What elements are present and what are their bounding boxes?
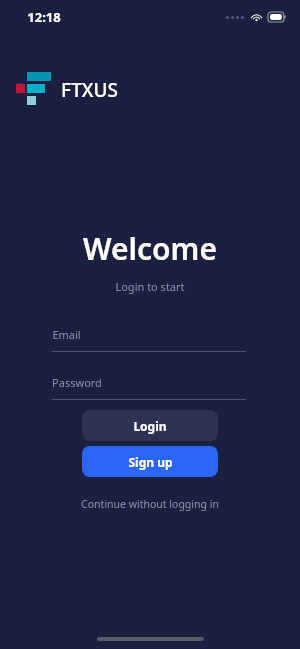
button[interactable]: Sign up xyxy=(82,446,218,477)
button[interactable]: FTX US logo xyxy=(16,70,118,110)
staticText: Login xyxy=(133,418,167,434)
button[interactable]: Email xyxy=(52,327,246,352)
staticText: Login to start xyxy=(115,279,185,294)
staticText: FTXUS xyxy=(61,77,118,103)
button[interactable]: Login xyxy=(82,410,218,441)
staticText: Welcome xyxy=(83,228,217,269)
staticText: Email xyxy=(52,327,81,342)
button[interactable]: Continue without logging in xyxy=(73,494,227,514)
staticText: Continue without logging in xyxy=(81,497,219,511)
staticText: Sign up xyxy=(128,454,173,470)
staticText: 12:18 xyxy=(27,8,61,26)
staticText: Password xyxy=(52,375,102,390)
button[interactable]: Password xyxy=(52,375,246,400)
